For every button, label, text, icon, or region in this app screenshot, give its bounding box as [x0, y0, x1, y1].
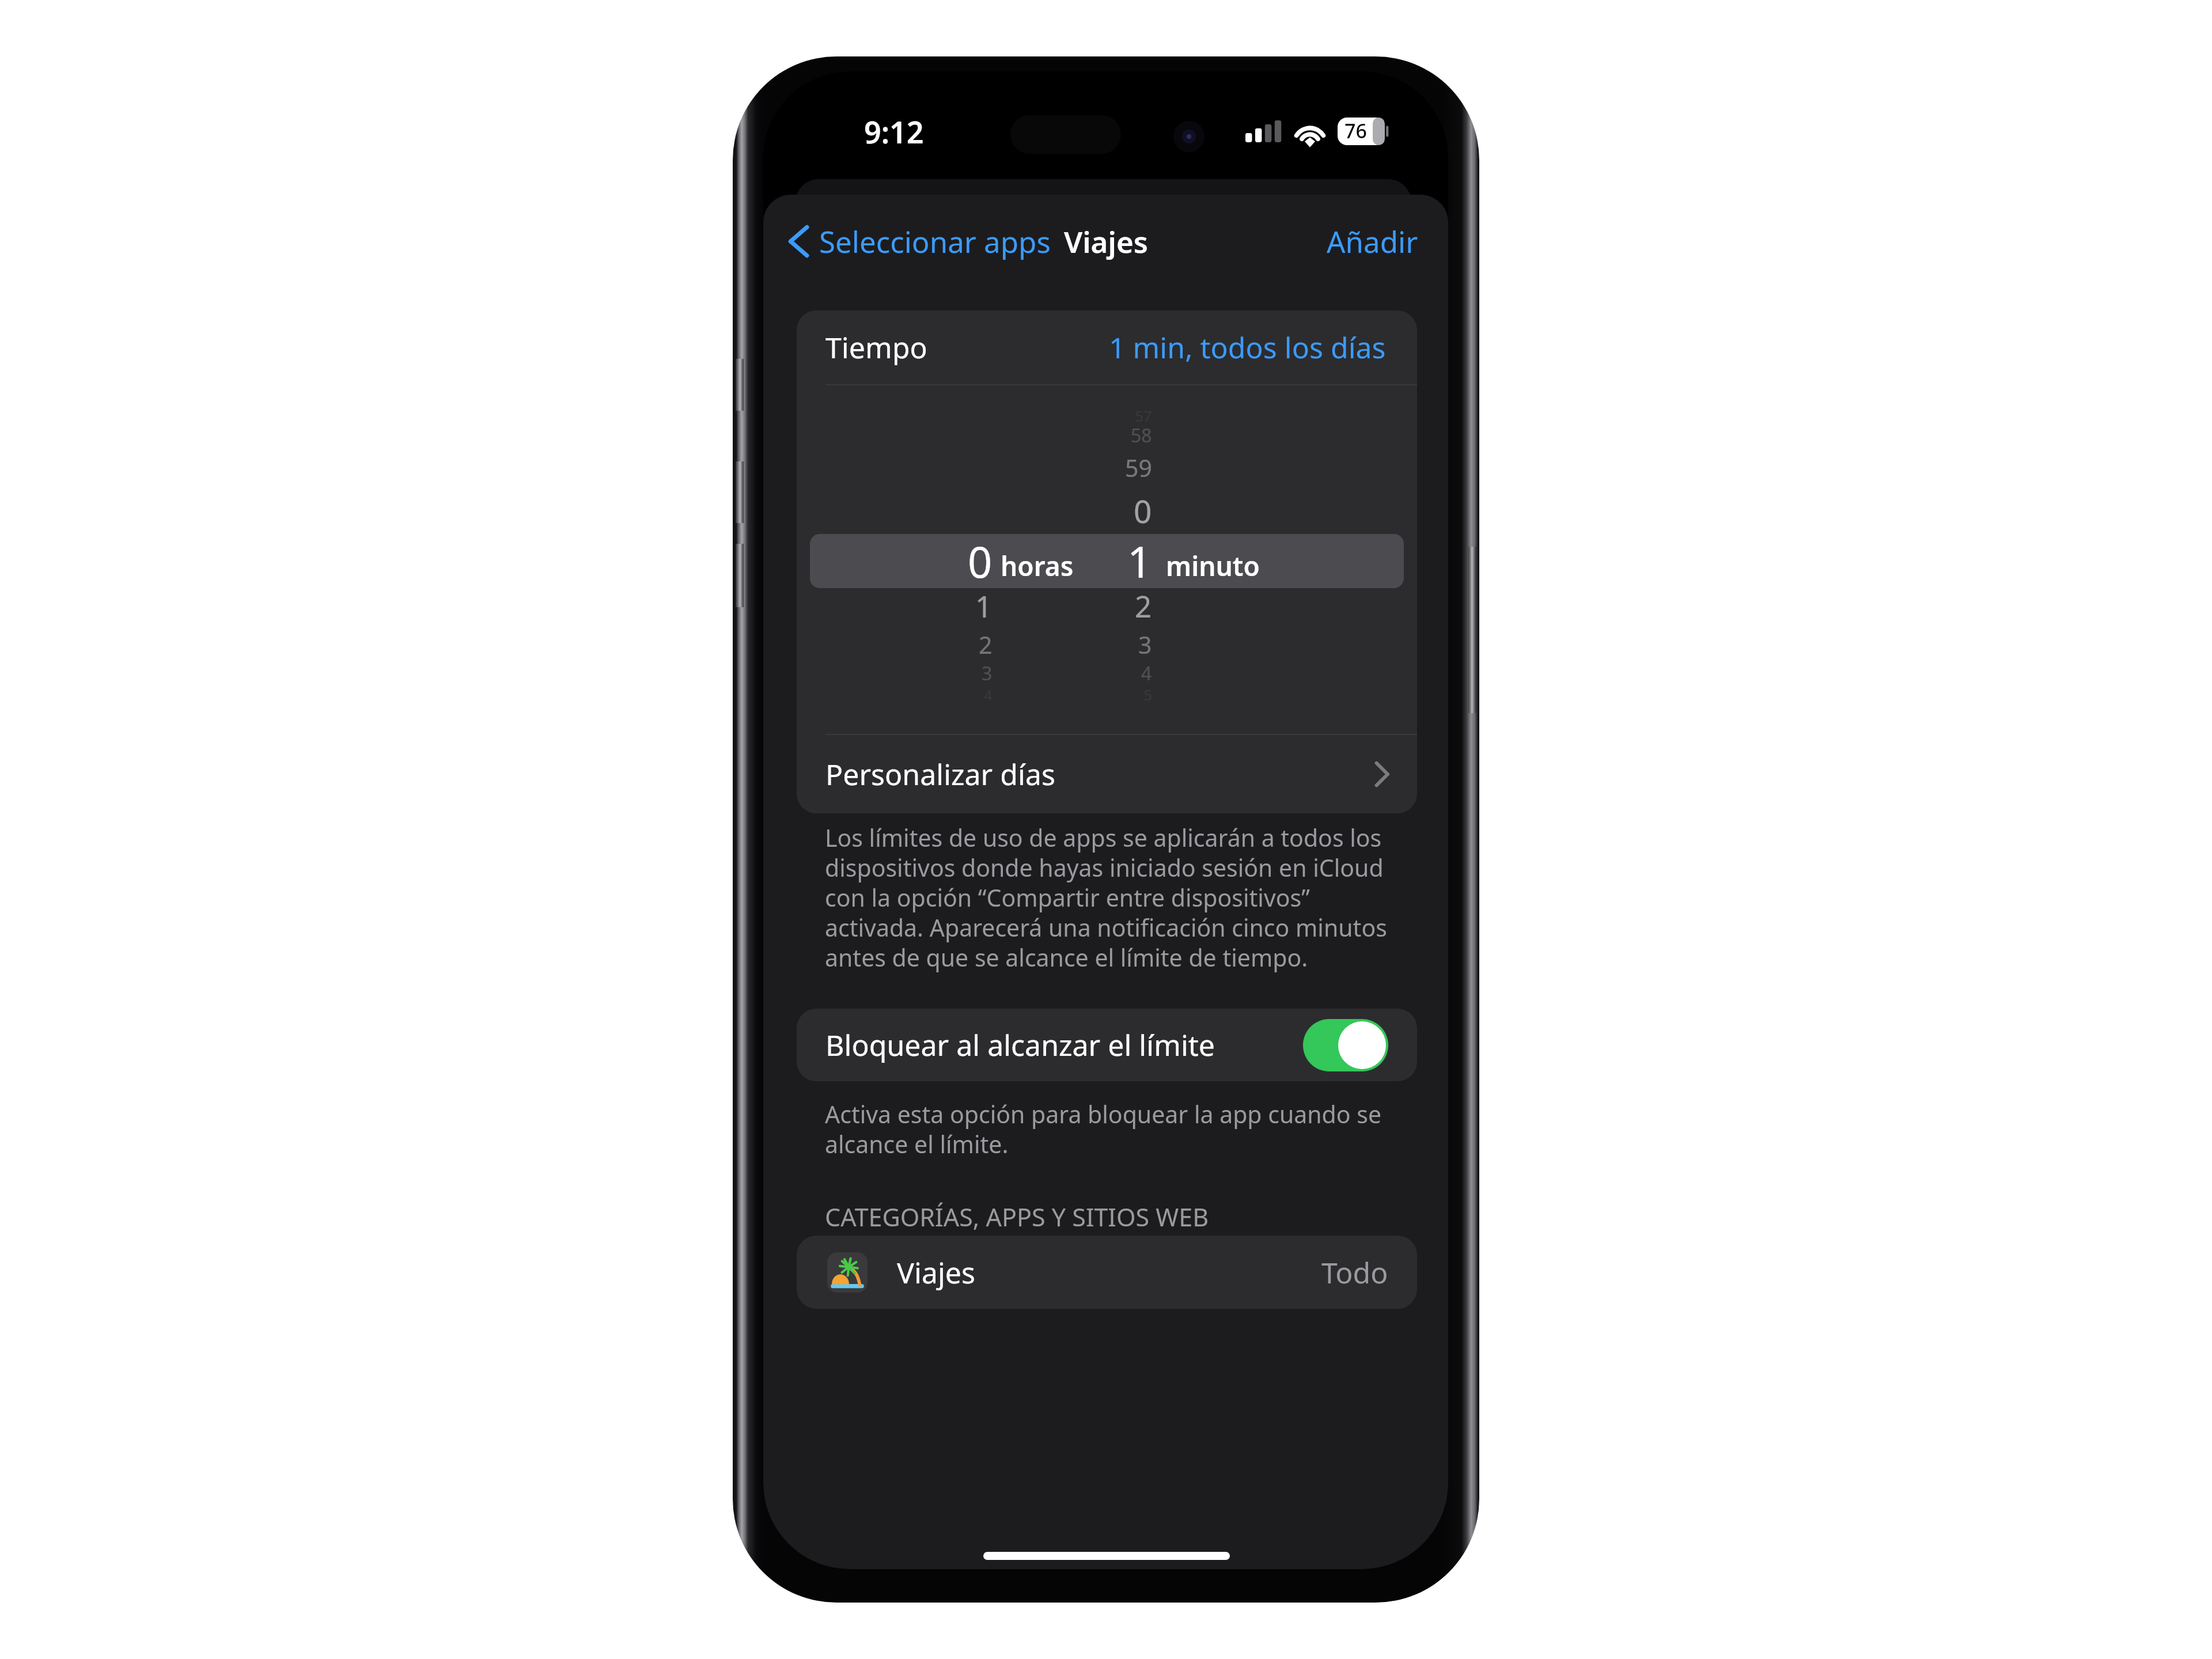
- staticText: Los límites de uso de apps se aplicarán …: [825, 821, 1407, 974]
- staticText: 1: [975, 586, 993, 626]
- staticText: 5: [1143, 684, 1152, 704]
- staticText: Bloquear al alcanzar el límite: [825, 1025, 1215, 1065]
- staticText: 4: [984, 684, 993, 704]
- staticText: Viajes: [1064, 221, 1148, 261]
- staticText: Tiempo: [825, 328, 927, 367]
- staticText: horas: [1001, 548, 1074, 584]
- staticText: 4: [1141, 661, 1152, 686]
- button[interactable]: Personalizar días: [797, 735, 1417, 813]
- staticText: 2: [1135, 586, 1152, 626]
- button[interactable]: Tiempo: [797, 310, 1417, 384]
- button[interactable]: Seleccionar apps: [763, 212, 1156, 270]
- staticText: 58: [1131, 423, 1152, 448]
- staticText: Viajes: [897, 1253, 975, 1292]
- staticText: 2: [979, 628, 993, 661]
- button[interactable]: Bloquear al alcanzar el límite: [797, 1009, 1417, 1081]
- staticText: 1 min, todos los días: [1109, 328, 1386, 367]
- staticText: 0: [968, 532, 993, 578]
- staticText: 57: [1135, 406, 1152, 426]
- button[interactable]: Viajes: [797, 1236, 1417, 1309]
- staticText: 0: [1134, 489, 1152, 532]
- staticText: Todo: [1321, 1253, 1388, 1292]
- staticText: Seleccionar apps: [819, 221, 1051, 261]
- staticText: CATEGORÍAS, APPS Y SITIOS WEB: [825, 1200, 1209, 1234]
- staticText: 3: [1138, 628, 1152, 661]
- staticText: 9:12: [864, 111, 924, 152]
- staticText: 76: [1344, 118, 1367, 144]
- staticText: 59: [1125, 452, 1152, 484]
- staticText: Añadir: [1327, 221, 1418, 261]
- staticText: minuto: [1166, 548, 1260, 584]
- staticText: 1: [1127, 532, 1152, 578]
- button[interactable]: Bloquear al alcanzar el límite, activado: [1303, 1019, 1388, 1071]
- staticText: Activa esta opción para bloquear la app …: [825, 1098, 1407, 1160]
- staticText: Personalizar días: [825, 755, 1055, 794]
- staticText: 3: [982, 661, 993, 686]
- button[interactable]: Añadir: [1309, 212, 1448, 270]
